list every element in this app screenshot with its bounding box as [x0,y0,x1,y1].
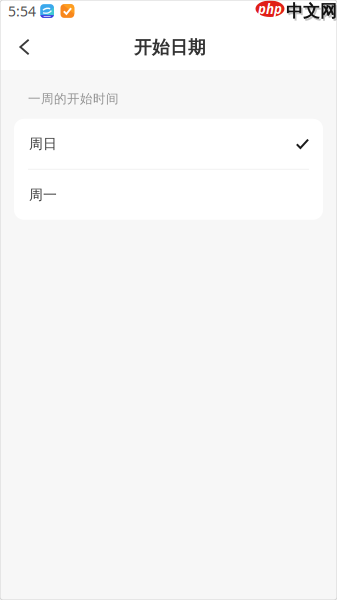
button[interactable]: 周一 [14,170,323,220]
staticText: php [258,0,282,18]
button[interactable]: Back [0,21,49,71]
staticText: 周日 [29,135,57,153]
staticText: 一周的开始时间 [28,91,119,107]
staticText: 周一 [29,186,57,204]
button[interactable]: 周日 [14,119,323,169]
staticText: 开始日期 [134,36,206,59]
staticText: 中文网 [286,0,337,22]
staticText: 5:54 [8,1,36,21]
